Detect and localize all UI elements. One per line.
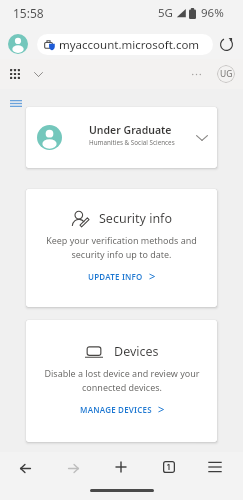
staticText: Humanities & Social Sciences — [89, 138, 175, 147]
button[interactable]: UG — [217, 65, 235, 83]
staticText: 15:58 — [13, 5, 44, 21]
button[interactable]: Under Graduate — [26, 107, 217, 168]
staticText: Under Graduate — [89, 123, 172, 137]
staticText: MANAGE DEVICES — [80, 404, 152, 415]
button[interactable]: App launcher — [6, 65, 24, 83]
button[interactable]: Forward — [58, 453, 88, 483]
staticText: 96% — [201, 5, 224, 21]
button[interactable]: More options — [188, 66, 204, 82]
staticText: UG — [220, 68, 233, 80]
button[interactable]: Expand — [29, 65, 47, 83]
button[interactable]: MANAGE DEVICES — [78, 403, 166, 416]
staticText: Security info — [99, 210, 172, 227]
staticText: myaccount.microsoft.com — [59, 37, 200, 53]
button[interactable]: Tabs — [154, 452, 184, 482]
staticText: UPDATE INFO — [88, 271, 143, 282]
button[interactable]: Devices — [26, 320, 217, 442]
button[interactable]: Reload — [215, 33, 237, 55]
staticText: Disable a lost device and review your co… — [44, 367, 200, 393]
button[interactable]: Expand account — [192, 128, 212, 148]
button[interactable]: Security info — [26, 189, 217, 307]
button[interactable]: UPDATE INFO — [86, 270, 157, 283]
button[interactable]: Back — [10, 453, 40, 483]
staticText: Devices — [114, 343, 159, 360]
button[interactable]: Menu — [200, 452, 230, 482]
button[interactable]: myaccount.microsoft.com — [37, 34, 213, 55]
button[interactable]: Account — [8, 34, 28, 54]
staticText: Keep your verification methods and secur… — [46, 234, 197, 260]
button[interactable]: New tab — [106, 452, 136, 482]
staticText: 5G — [158, 5, 173, 21]
button[interactable]: Menu — [8, 95, 24, 111]
